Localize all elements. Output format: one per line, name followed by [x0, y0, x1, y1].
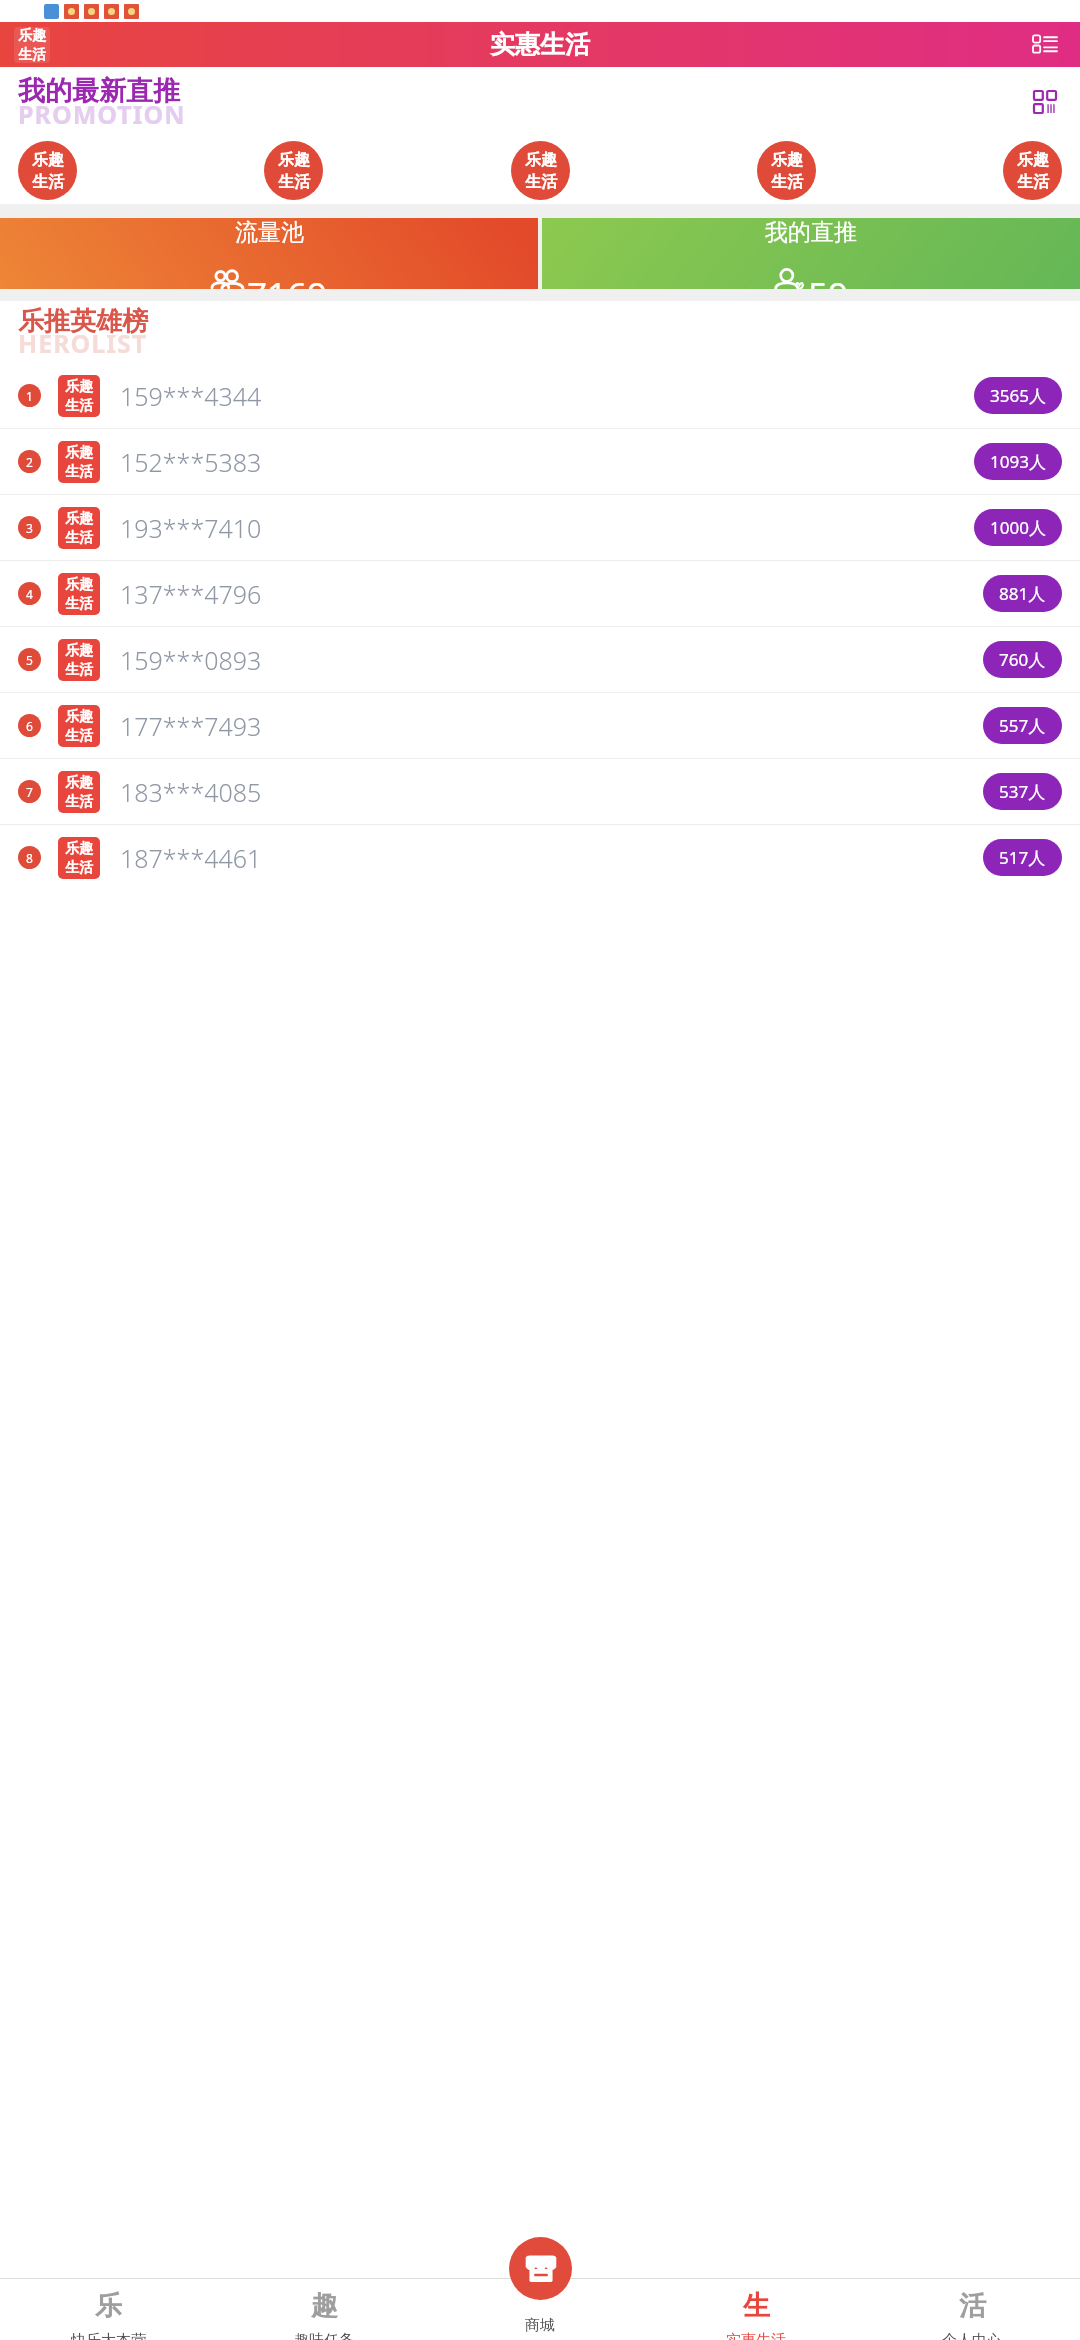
- staticText: 乐趣: [65, 774, 93, 792]
- staticText: 实惠生活: [490, 29, 590, 60]
- staticText: 生活: [65, 463, 93, 481]
- staticText: 乐推英雄榜: [18, 305, 148, 338]
- staticText: 760人: [999, 648, 1046, 671]
- staticText: 193***7410: [120, 511, 262, 545]
- staticText: 我的最新直推: [18, 74, 180, 108]
- button[interactable]: 乐趣: [511, 141, 570, 200]
- staticText: 乐趣: [65, 444, 93, 462]
- staticText: 生活: [32, 172, 64, 192]
- button[interactable]: 商城 Shop: [509, 2237, 572, 2300]
- staticText: 8: [26, 850, 33, 866]
- button[interactable]: 3: [0, 495, 1080, 560]
- staticText: 7169: [247, 271, 328, 289]
- button[interactable]: 流量池: [0, 218, 538, 289]
- staticText: 2: [26, 454, 33, 470]
- staticText: 517人: [999, 846, 1046, 869]
- staticText: HEROLIST: [18, 326, 148, 360]
- staticText: 乐趣: [18, 27, 46, 45]
- staticText: 实惠生活: [726, 2331, 786, 2340]
- staticText: 152***5383: [120, 445, 262, 479]
- button[interactable]: QR code: [1030, 87, 1060, 117]
- staticText: 乐趣: [278, 150, 310, 170]
- staticText: 3: [26, 520, 33, 536]
- staticText: 137***4796: [120, 577, 262, 611]
- button[interactable]: 乐: [0, 2278, 216, 2340]
- staticText: 5: [26, 652, 33, 668]
- staticText: 趣: [311, 2289, 338, 2323]
- staticText: 乐趣: [525, 150, 557, 170]
- staticText: 1000人: [990, 516, 1046, 539]
- staticText: 乐趣: [32, 150, 64, 170]
- button[interactable]: 乐趣: [757, 141, 816, 200]
- button[interactable]: 乐趣: [18, 141, 77, 200]
- button[interactable]: 生: [648, 2278, 864, 2340]
- staticText: 乐趣: [65, 708, 93, 726]
- staticText: 乐趣: [1017, 150, 1049, 170]
- staticText: 1: [26, 388, 33, 404]
- staticText: 流量池: [235, 218, 304, 247]
- button[interactable]: 乐趣: [1003, 141, 1062, 200]
- staticText: 活: [959, 2289, 986, 2323]
- button[interactable]: 商城: [432, 2278, 648, 2340]
- staticText: 乐趣: [65, 378, 93, 396]
- button[interactable]: 5: [0, 627, 1080, 692]
- button[interactable]: 6: [0, 693, 1080, 758]
- staticText: 177***7493: [120, 709, 262, 743]
- staticText: 159***0893: [120, 643, 262, 677]
- staticText: 生活: [65, 529, 93, 547]
- staticText: 乐趣: [65, 510, 93, 528]
- staticText: 3565人: [990, 384, 1046, 407]
- button[interactable]: 趣: [216, 2278, 432, 2340]
- staticText: 商城: [525, 2316, 555, 2335]
- staticText: 生活: [65, 727, 93, 745]
- staticText: 乐趣: [65, 840, 93, 858]
- button[interactable]: 乐趣: [14, 27, 50, 63]
- staticText: 生活: [65, 859, 93, 877]
- staticText: 4: [26, 586, 33, 602]
- staticText: 个人中心: [942, 2331, 1002, 2340]
- staticText: 537人: [999, 780, 1046, 803]
- button[interactable]: 1: [0, 363, 1080, 428]
- staticText: 1093人: [990, 450, 1046, 473]
- staticText: 生活: [1017, 172, 1049, 192]
- staticText: 乐趣: [771, 150, 803, 170]
- staticText: 生活: [65, 661, 93, 679]
- staticText: 生活: [65, 793, 93, 811]
- staticText: 187***4461: [120, 841, 262, 875]
- staticText: 趣味任务: [294, 2331, 354, 2340]
- staticText: 881人: [999, 582, 1046, 605]
- staticText: 生活: [278, 172, 310, 192]
- staticText: 159***4344: [120, 379, 262, 413]
- staticText: 生活: [65, 595, 93, 613]
- button[interactable]: 乐趣: [264, 141, 323, 200]
- button[interactable]: 7: [0, 759, 1080, 824]
- staticText: 183***4085: [120, 775, 262, 809]
- staticText: 生活: [65, 397, 93, 415]
- staticText: 59: [808, 271, 849, 289]
- staticText: 6: [26, 718, 33, 734]
- button[interactable]: 8: [0, 825, 1080, 890]
- button[interactable]: 我的直推: [542, 218, 1080, 289]
- staticText: 7: [26, 784, 33, 800]
- staticText: PROMOTION: [18, 97, 186, 131]
- staticText: 乐: [95, 2289, 122, 2323]
- staticText: 生活: [18, 46, 46, 63]
- staticText: 快乐大本营: [71, 2331, 146, 2340]
- staticText: 生活: [525, 172, 557, 192]
- staticText: 我的直推: [765, 218, 857, 247]
- staticText: 生活: [771, 172, 803, 192]
- button[interactable]: 2: [0, 429, 1080, 494]
- staticText: 乐趣: [65, 642, 93, 660]
- button[interactable]: 活: [864, 2278, 1080, 2340]
- button[interactable]: 4: [0, 561, 1080, 626]
- button[interactable]: List view: [1028, 28, 1062, 62]
- staticText: 乐趣: [65, 576, 93, 594]
- staticText: 生: [743, 2289, 770, 2323]
- staticText: 557人: [999, 714, 1046, 737]
